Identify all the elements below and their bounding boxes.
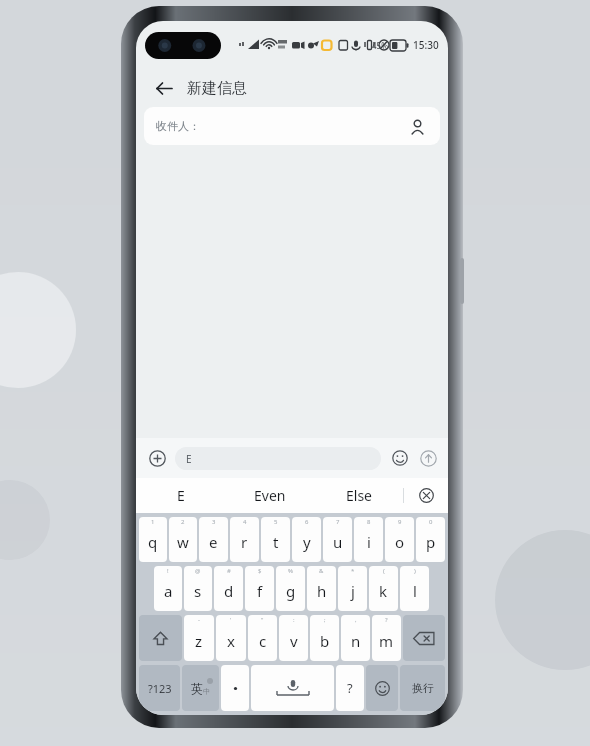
button[interactable]: 3 [199, 517, 228, 562]
staticText: % [288, 567, 293, 575]
staticText: k [379, 581, 388, 601]
staticText: l [413, 581, 417, 601]
button[interactable]: - [184, 615, 214, 661]
button[interactable]: Back [150, 74, 178, 102]
button[interactable]: ; [310, 615, 339, 661]
button[interactable]: ?123 [139, 665, 180, 711]
staticText: 2 [181, 518, 185, 526]
staticText: Else [346, 486, 372, 505]
button[interactable]: % [276, 566, 305, 611]
button[interactable]: E [175, 447, 381, 470]
button[interactable]: Space [251, 665, 334, 711]
button[interactable]: Else [314, 478, 403, 513]
staticText: s [194, 581, 202, 601]
staticText: " [261, 616, 264, 624]
staticText: 15:30 [413, 38, 439, 52]
button[interactable]: Emoji [366, 665, 398, 711]
button[interactable]: Even [225, 478, 314, 513]
staticText: i [367, 532, 371, 552]
staticText: 9 [398, 518, 402, 526]
button[interactable]: Close suggestions [404, 478, 448, 513]
staticText: & [319, 567, 324, 575]
button[interactable]: : [279, 615, 308, 661]
staticText: 新建信息 [187, 79, 247, 98]
button[interactable]: 6 [292, 517, 321, 562]
button[interactable]: 0 [416, 517, 445, 562]
staticText: v [290, 631, 298, 651]
button[interactable]: ( [369, 566, 398, 611]
staticText: - [198, 616, 200, 624]
button[interactable]: Send [416, 446, 440, 470]
staticText: ( [383, 567, 385, 575]
staticText: 1 [151, 518, 155, 526]
button[interactable]: " [248, 615, 277, 661]
staticText: Even [254, 486, 286, 505]
button[interactable]: # [214, 566, 243, 611]
staticText: o [395, 532, 405, 552]
button[interactable]: 英 [182, 665, 219, 711]
staticText: E [186, 452, 192, 466]
button[interactable]: Period [221, 665, 249, 711]
staticText: r [241, 532, 248, 552]
button[interactable]: 收件人： [144, 107, 440, 145]
button[interactable]: Backspace [403, 615, 445, 661]
button[interactable]: 9 [385, 517, 414, 562]
staticText: ; [324, 616, 326, 624]
staticText: 6 [305, 518, 309, 526]
staticText: , [355, 616, 357, 624]
staticText: u [333, 532, 343, 552]
staticText: g [286, 581, 296, 601]
staticText: : [293, 616, 295, 624]
button[interactable]: Shift [139, 615, 182, 661]
staticText: j [351, 581, 355, 601]
button[interactable]: ! [154, 566, 182, 611]
button[interactable]: ) [400, 566, 429, 611]
staticText: 0 [429, 518, 433, 526]
staticText: ? [385, 616, 388, 624]
button[interactable]: E [136, 478, 225, 513]
button[interactable]: & [307, 566, 336, 611]
button[interactable]: 换行 [400, 665, 445, 711]
staticText: $ [258, 567, 262, 575]
staticText: ' [230, 616, 232, 624]
button[interactable]: 1 [139, 517, 167, 562]
staticText: 4 [243, 518, 247, 526]
staticText: 换行 [412, 681, 434, 695]
staticText: m [379, 631, 394, 651]
staticText: 7 [336, 518, 340, 526]
staticText: n [351, 631, 361, 651]
button[interactable]: @ [184, 566, 212, 611]
staticText: p [426, 532, 436, 552]
staticText: f [257, 581, 263, 601]
staticText: ) [414, 567, 416, 575]
button[interactable]: ? [336, 665, 364, 711]
button[interactable]: 8 [354, 517, 383, 562]
staticText: c [259, 631, 267, 651]
staticText: 中 [203, 687, 210, 696]
staticText: t [273, 532, 279, 552]
button[interactable]: Emoji [388, 446, 412, 470]
staticText: h [317, 581, 327, 601]
button[interactable]: Pick contact [406, 115, 428, 137]
button[interactable]: 7 [323, 517, 352, 562]
staticText: @ [195, 567, 201, 575]
staticText: 5 [274, 518, 278, 526]
staticText: # [227, 567, 231, 575]
button[interactable]: $ [245, 566, 274, 611]
staticText: E [177, 486, 185, 505]
button[interactable]: ' [216, 615, 246, 661]
staticText: ? [347, 679, 353, 697]
button[interactable]: 5 [261, 517, 290, 562]
button[interactable]: ? [372, 615, 401, 661]
button[interactable]: * [338, 566, 367, 611]
staticText: z [195, 631, 203, 651]
staticText: 45% [372, 40, 388, 51]
staticText: d [224, 581, 234, 601]
button[interactable]: 2 [169, 517, 197, 562]
staticText: y [303, 532, 311, 552]
staticText: q [148, 532, 158, 552]
button[interactable]: , [341, 615, 370, 661]
button[interactable]: Add attachment [144, 445, 170, 471]
button[interactable]: 4 [230, 517, 259, 562]
staticText: w [177, 532, 189, 552]
